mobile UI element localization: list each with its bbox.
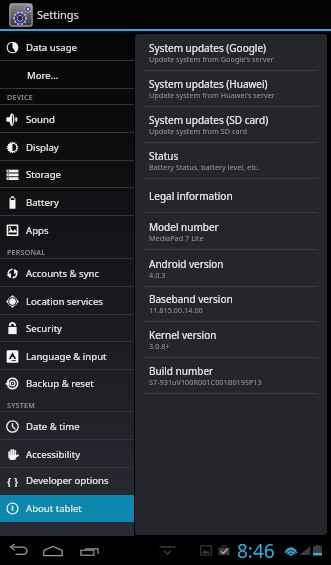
button[interactable]: { }	[0, 467, 134, 494]
staticText: MediaPad 7 Lite	[149, 233, 204, 243]
button[interactable]: Back	[6, 536, 31, 565]
button[interactable]: Recent apps	[76, 536, 102, 565]
button[interactable]: Build number	[135, 358, 327, 394]
staticText: 11.815.00.14.00	[149, 305, 203, 315]
staticText: 8:46	[237, 538, 275, 564]
button[interactable]: Battery	[0, 188, 134, 216]
staticText: Developer options	[26, 474, 109, 487]
staticText: Apps	[26, 224, 49, 237]
button[interactable]: Hide navigation bar	[157, 536, 177, 565]
button[interactable]: Location services	[0, 287, 134, 315]
staticText: System updates (SD card)	[149, 113, 269, 127]
staticText: System updates (Huawei)	[149, 77, 268, 91]
staticText: Status	[149, 149, 179, 163]
staticText: Battery	[26, 196, 59, 209]
button[interactable]: Language & input	[0, 342, 134, 370]
button[interactable]: Accessibility	[0, 440, 134, 468]
button[interactable]: Kernel version	[135, 322, 327, 358]
button[interactable]: Data usage	[0, 33, 134, 61]
staticText: Android version	[149, 257, 224, 271]
button[interactable]: Display	[0, 133, 134, 161]
staticText: Update system from Google's server	[149, 54, 274, 64]
staticText: Display	[26, 141, 59, 154]
staticText: DEVICE	[7, 92, 33, 102]
staticText: SYSTEM	[7, 400, 35, 410]
staticText: PERSONAL	[7, 247, 46, 257]
staticText: Language & input	[26, 350, 107, 363]
staticText: Battery Status, battery level, etc.	[149, 162, 260, 172]
button[interactable]: Security	[0, 314, 134, 342]
button[interactable]: Storage	[0, 161, 134, 188]
staticText: Data usage	[26, 41, 77, 54]
staticText: Storage	[26, 168, 61, 181]
button[interactable]: About tablet	[0, 495, 134, 522]
staticText: Model number	[149, 220, 219, 234]
staticText: Update system from SD card	[149, 126, 247, 136]
staticText: Kernel version	[149, 328, 217, 342]
button[interactable]: Android version	[135, 251, 327, 287]
staticText: Accessibility	[26, 448, 81, 461]
staticText: S7-931uV100R001C001B019SP13	[149, 377, 262, 387]
staticText: Baseband version	[149, 292, 233, 306]
button[interactable]: Sound	[0, 105, 134, 133]
staticText: Backup & reset	[26, 377, 94, 390]
button[interactable]: Home	[39, 536, 67, 565]
staticText: System updates (Google)	[149, 41, 267, 55]
button[interactable]: More...	[0, 61, 134, 89]
staticText: Security	[26, 322, 63, 335]
staticText: More...	[27, 69, 59, 82]
staticText: Date & time	[26, 420, 80, 433]
button[interactable]: Baseband version	[135, 286, 327, 322]
staticText: { }	[7, 474, 19, 487]
staticText: About tablet	[26, 502, 82, 515]
button[interactable]: System updates (Google)	[135, 34, 327, 71]
button[interactable]: Model number	[135, 213, 327, 250]
staticText: Update system from Huawei's server	[149, 90, 275, 100]
button[interactable]: Accounts & sync	[0, 259, 134, 287]
button[interactable]: System updates (SD card)	[135, 107, 327, 143]
button[interactable]: Apps	[0, 216, 134, 244]
button[interactable]: Date & time	[0, 412, 134, 440]
staticText: 4.0.3	[149, 270, 166, 280]
staticText: Sound	[26, 113, 55, 126]
button[interactable]: Status	[135, 143, 327, 179]
staticText: Settings	[37, 7, 79, 22]
button[interactable]: System updates (Huawei)	[135, 71, 327, 107]
staticText: Accounts & sync	[26, 267, 100, 280]
staticText: 3.0.8+	[149, 341, 170, 351]
staticText: Build number	[149, 364, 214, 378]
button[interactable]: Backup & reset	[0, 370, 134, 397]
staticText: Legal information	[149, 189, 233, 203]
staticText: Location services	[26, 295, 103, 308]
button[interactable]: Legal information	[135, 179, 327, 213]
